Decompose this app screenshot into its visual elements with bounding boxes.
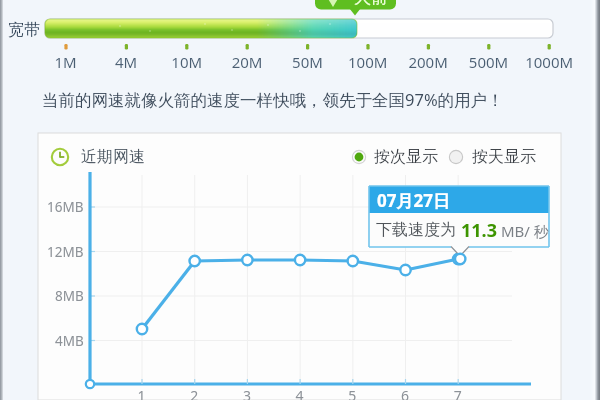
staticText: 按次显示 — [348, 147, 412, 167]
staticText: 按天显示 — [445, 147, 509, 167]
button[interactable]: 按次显示 — [348, 146, 438, 168]
button[interactable]: 宽带速率 — [45, 19, 553, 38]
button[interactable]: 火箭 — [315, 0, 396, 10]
button[interactable]: 按天显示 — [445, 146, 535, 168]
